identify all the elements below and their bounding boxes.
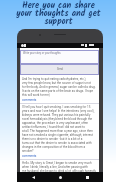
button[interactable]: Back bbox=[22, 172, 44, 182]
button[interactable]: Write your story or your thoughts bbox=[20, 50, 99, 64]
button[interactable]: Hello. My story is Great, I began to smo… bbox=[20, 160, 99, 172]
staticText: Hello. My story is Great, I began to smo… bbox=[22, 161, 96, 172]
button[interactable]: And I'm trying to quit eating carbohydra… bbox=[20, 76, 99, 103]
button[interactable]: comments bbox=[22, 98, 37, 102]
button[interactable]: Recents bbox=[76, 172, 98, 182]
staticText: I'll tell you how I quit smoking. I was … bbox=[22, 105, 95, 153]
staticText: Write your story or your thoughts bbox=[23, 52, 61, 55]
button[interactable]: I'll tell you how I quit smoking. I was … bbox=[20, 104, 99, 159]
button[interactable]: Home bbox=[49, 172, 71, 182]
staticText: Here you can share your thoughts and get… bbox=[16, 0, 101, 29]
staticText: Send bbox=[57, 68, 63, 71]
staticText: And I'm trying to quit eating carbohydra… bbox=[22, 77, 96, 97]
button[interactable]: comments bbox=[22, 154, 37, 158]
button[interactable]: Send bbox=[21, 65, 98, 74]
